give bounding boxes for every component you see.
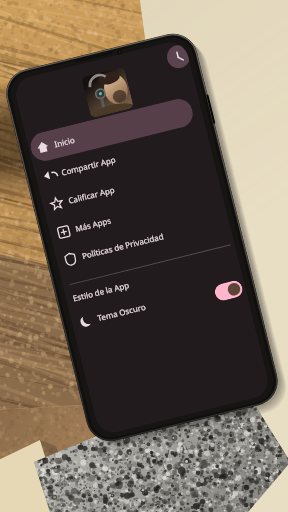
- button[interactable]: Calificar App: [42, 152, 210, 220]
- staticText: Inicio: [53, 134, 76, 149]
- staticText: Tema Oscuro: [96, 301, 147, 323]
- button[interactable]: Políticas de Privacidad: [55, 208, 223, 276]
- button[interactable]: Inicio: [28, 96, 196, 164]
- button[interactable]: Tema Oscuro: [213, 279, 244, 302]
- staticText: Calificar App: [67, 184, 116, 206]
- staticText: Más Apps: [74, 214, 113, 234]
- button[interactable]: Tema Oscuro: [71, 270, 239, 338]
- staticText: Estilo de la App: [72, 279, 130, 303]
- staticText: Políticas de Privacidad: [81, 230, 165, 261]
- staticText: Compartir App: [60, 153, 117, 178]
- button[interactable]: Más Apps: [48, 180, 217, 248]
- button[interactable]: Compartir App: [35, 124, 203, 192]
